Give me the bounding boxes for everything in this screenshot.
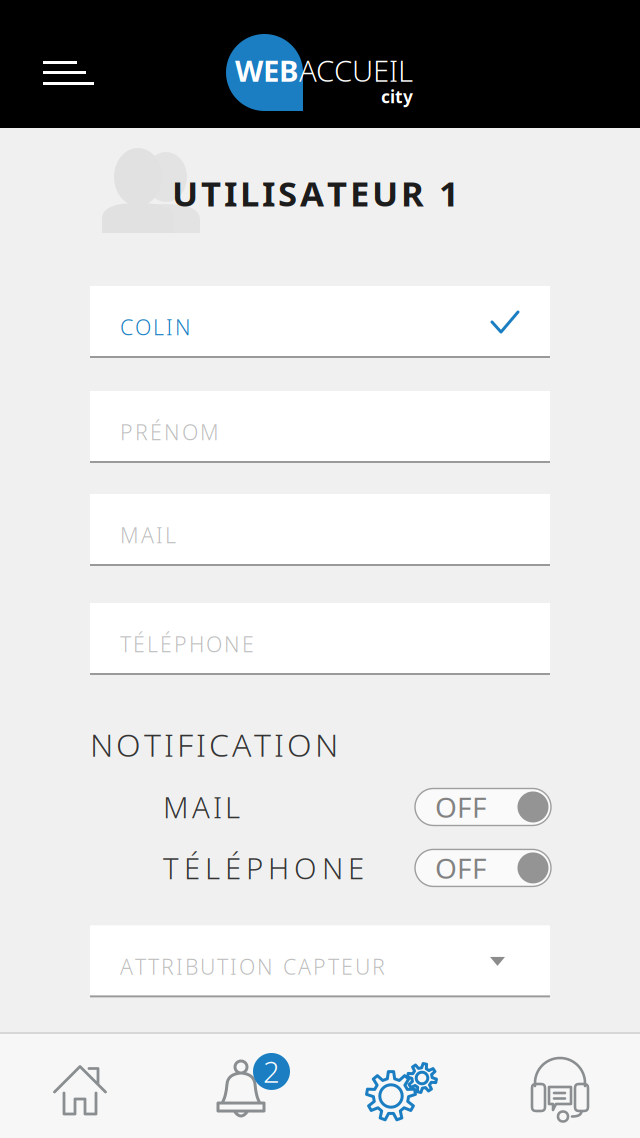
button[interactable]: Notification off	[415, 849, 551, 886]
button[interactable]: Menu	[0, 0, 129, 129]
staticText: M A I L	[163, 787, 240, 826]
staticText: T É L É P H O N E	[163, 848, 364, 887]
staticText: WEB	[235, 51, 299, 90]
staticText: N O T I F I C A T I O N	[90, 723, 338, 765]
button[interactable]: A T T R I B U T I O N C A P T E U R	[90, 925, 550, 997]
staticText: 2	[263, 1052, 280, 1091]
staticText: OFF	[435, 788, 487, 826]
staticText: city	[381, 85, 413, 108]
staticText: OFF	[435, 849, 487, 886]
button[interactable]: T É L É P H O N E	[90, 603, 550, 675]
button[interactable]: M A I L	[90, 494, 550, 566]
staticText: A T T R I B U T I O N C A P T E U R	[120, 952, 385, 980]
staticText: T É L É P H O N E	[120, 630, 254, 658]
staticText: ACCUEIL	[299, 51, 413, 90]
staticText: U T I L I S A T E U R 1	[172, 170, 459, 216]
staticText: P R É N O M	[120, 418, 219, 446]
button[interactable]: P R É N O M	[90, 391, 550, 463]
button[interactable]: Settings	[320, 1032, 480, 1138]
button[interactable]: C O L I N	[90, 286, 550, 358]
button[interactable]: Support	[480, 1032, 640, 1138]
staticText: M A I L	[120, 521, 176, 549]
staticText: C O L I N	[120, 313, 191, 341]
button[interactable]: Notification off	[415, 788, 551, 825]
button[interactable]: Home	[0, 1032, 160, 1138]
button[interactable]: Notifications, 2 unread	[160, 1032, 320, 1138]
